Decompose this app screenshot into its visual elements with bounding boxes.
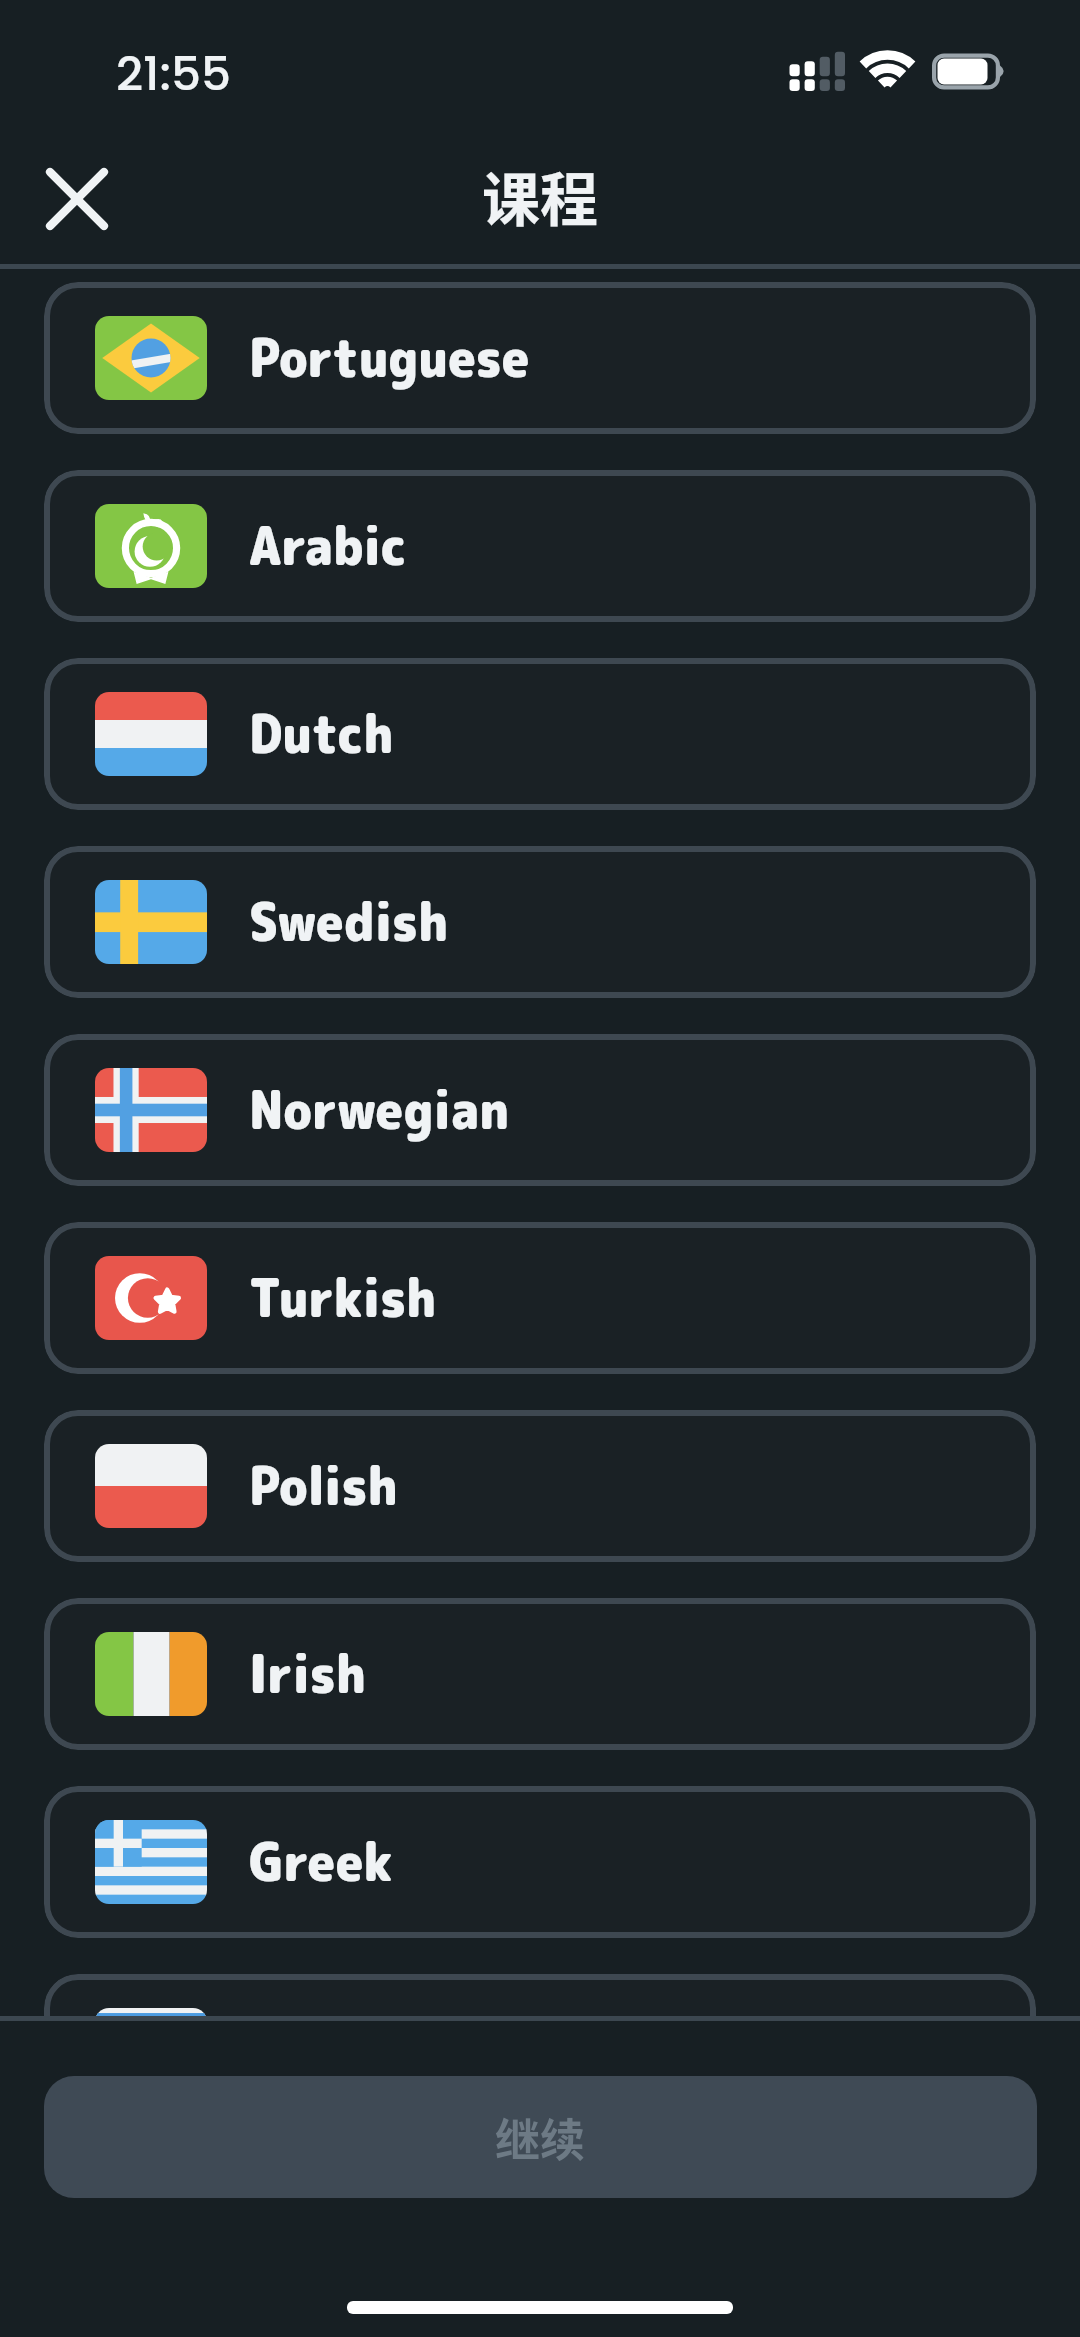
- staticText: Irish: [249, 1635, 366, 1710]
- staticText: 继续: [495, 2105, 586, 2170]
- staticText: Portuguese: [249, 319, 530, 394]
- button[interactable]: Turkish: [44, 1222, 1036, 1374]
- staticText: 21:55: [116, 41, 232, 107]
- staticText: Turkish: [249, 1259, 437, 1334]
- button[interactable]: Norwegian: [44, 1034, 1036, 1186]
- button[interactable]: Irish: [44, 1598, 1036, 1750]
- button[interactable]: Greek: [44, 1786, 1036, 1938]
- button[interactable]: Dutch: [44, 658, 1036, 810]
- button[interactable]: Arabic: [44, 470, 1036, 622]
- staticText: Greek: [249, 1823, 393, 1898]
- button[interactable]: 继续: [44, 2076, 1037, 2198]
- button[interactable]: Polish: [44, 1410, 1036, 1562]
- staticText: Norwegian: [249, 1071, 509, 1146]
- button[interactable]: Hebrew: [44, 1974, 1036, 2016]
- staticText: Swedish: [249, 883, 449, 958]
- staticText: Dutch: [249, 695, 394, 770]
- button[interactable]: Swedish: [44, 846, 1036, 998]
- staticText: 课程: [482, 154, 599, 238]
- staticText: Polish: [249, 1447, 398, 1522]
- staticText: Arabic: [249, 507, 407, 582]
- button[interactable]: Portuguese: [44, 282, 1036, 434]
- button[interactable]: Close: [32, 154, 122, 244]
